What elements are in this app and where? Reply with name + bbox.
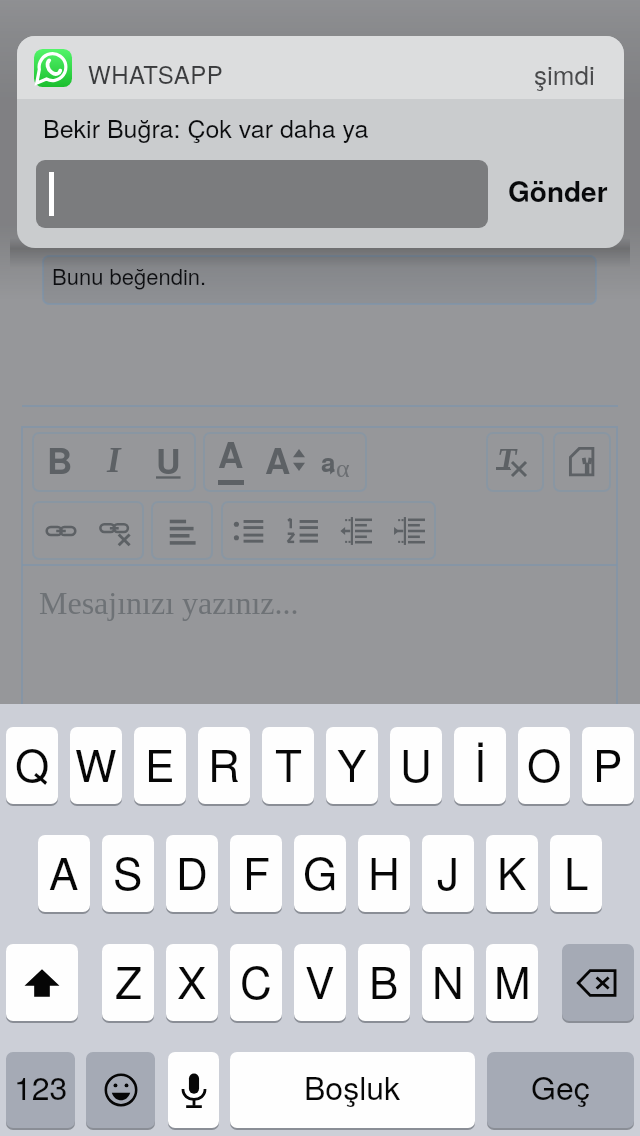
button[interactable]: C (230, 944, 282, 1021)
button[interactable]: Italic (87, 433, 141, 491)
button[interactable]: O (518, 727, 570, 804)
staticText: Y (337, 731, 367, 794)
staticText: D (176, 839, 208, 902)
staticText: K (497, 839, 527, 902)
button[interactable]: Decrease indent (329, 502, 382, 559)
button[interactable]: Emoji (86, 1052, 155, 1128)
staticText: W (75, 731, 117, 794)
staticText: Boşluk (304, 1063, 401, 1109)
staticText: WHATSAPP (88, 56, 224, 90)
staticText: İ (474, 731, 487, 794)
button[interactable]: Bulleted list (222, 502, 276, 559)
button[interactable]: Insert link (33, 502, 88, 559)
button[interactable]: Underline (141, 433, 195, 491)
staticText: Gönder (508, 170, 608, 210)
button[interactable]: Source (554, 433, 610, 491)
staticText: F (243, 839, 270, 902)
staticText: Bunu beğendin. (52, 260, 207, 292)
button[interactable]: WhatsApp (34, 49, 72, 87)
button[interactable]: Z (102, 944, 154, 1021)
staticText: Z (115, 948, 142, 1011)
staticText: V (305, 948, 335, 1011)
button[interactable]: H (358, 835, 410, 912)
button[interactable]: F (230, 835, 282, 912)
staticText: T (275, 731, 302, 794)
staticText: α (336, 454, 350, 483)
button[interactable]: Backspace (562, 944, 634, 1021)
staticText: H (368, 839, 400, 902)
button[interactable]: T (262, 727, 314, 804)
button[interactable]: L (550, 835, 602, 912)
button[interactable]: WhatsApp (17, 36, 624, 248)
button[interactable]: A (38, 835, 90, 912)
button[interactable]: Q (6, 727, 58, 804)
staticText: 123 (14, 1063, 68, 1109)
button[interactable]: İ (454, 727, 506, 804)
staticText: C (240, 948, 272, 1011)
button[interactable]: Increase indent (382, 502, 435, 559)
button[interactable]: Align (152, 502, 212, 559)
staticText: A (265, 435, 291, 485)
staticText: Bekir Buğra: Çok var daha ya (43, 109, 369, 145)
staticText: O (527, 731, 562, 794)
staticText: G (303, 839, 338, 902)
staticText: L (564, 839, 589, 902)
staticText: A (218, 429, 244, 479)
staticText: E (145, 731, 175, 794)
staticText: U (156, 436, 181, 485)
staticText: Mesajınızı yazınız... (39, 585, 299, 620)
button[interactable]: Bold (33, 433, 87, 491)
button[interactable]: 123 (6, 1052, 75, 1128)
staticText: B (369, 948, 399, 1011)
button[interactable]: Clear formatting (487, 433, 543, 491)
button[interactable]: Dictation (168, 1052, 219, 1128)
staticText: B (47, 435, 73, 485)
staticText: N (432, 948, 464, 1011)
button[interactable] (36, 160, 488, 228)
staticText: a (321, 443, 336, 480)
button[interactable]: Numbered list (276, 502, 329, 559)
staticText: J (437, 839, 459, 902)
button[interactable]: B (358, 944, 410, 1021)
button[interactable]: R (198, 727, 250, 804)
staticText: P (593, 731, 623, 794)
staticText: şimdi (534, 55, 595, 92)
button[interactable] (43, 256, 596, 304)
staticText: S (113, 839, 143, 902)
staticText: M (494, 948, 531, 1011)
button[interactable]: Geç (487, 1052, 634, 1128)
button[interactable]: Text colour (204, 433, 258, 491)
button[interactable]: Boşluk (230, 1052, 475, 1128)
staticText: Geç (531, 1063, 590, 1109)
button[interactable]: G (294, 835, 346, 912)
button[interactable]: Font size (258, 433, 312, 491)
button[interactable]: Font family (312, 433, 366, 491)
button[interactable]: K (486, 835, 538, 912)
staticText: X (177, 948, 207, 1011)
staticText: Q (15, 731, 50, 794)
button[interactable]: M (486, 944, 538, 1021)
button[interactable]: S (102, 835, 154, 912)
button[interactable]: X (166, 944, 218, 1021)
button[interactable]: Gönder (498, 158, 618, 222)
button[interactable]: P (582, 727, 634, 804)
staticText: U (400, 731, 432, 794)
button[interactable]: Shift (6, 944, 78, 1021)
staticText: I (107, 441, 121, 480)
button[interactable]: Y (326, 727, 378, 804)
button[interactable]: J (422, 835, 474, 912)
button[interactable]: N (422, 944, 474, 1021)
button[interactable]: Remove link (88, 502, 143, 559)
staticText: R (208, 731, 240, 794)
staticText: T (497, 441, 517, 476)
button[interactable]: V (294, 944, 346, 1021)
button[interactable]: U (390, 727, 442, 804)
button[interactable]: W (70, 727, 122, 804)
button[interactable]: D (166, 835, 218, 912)
button[interactable]: E (134, 727, 186, 804)
staticText: A (49, 839, 79, 902)
